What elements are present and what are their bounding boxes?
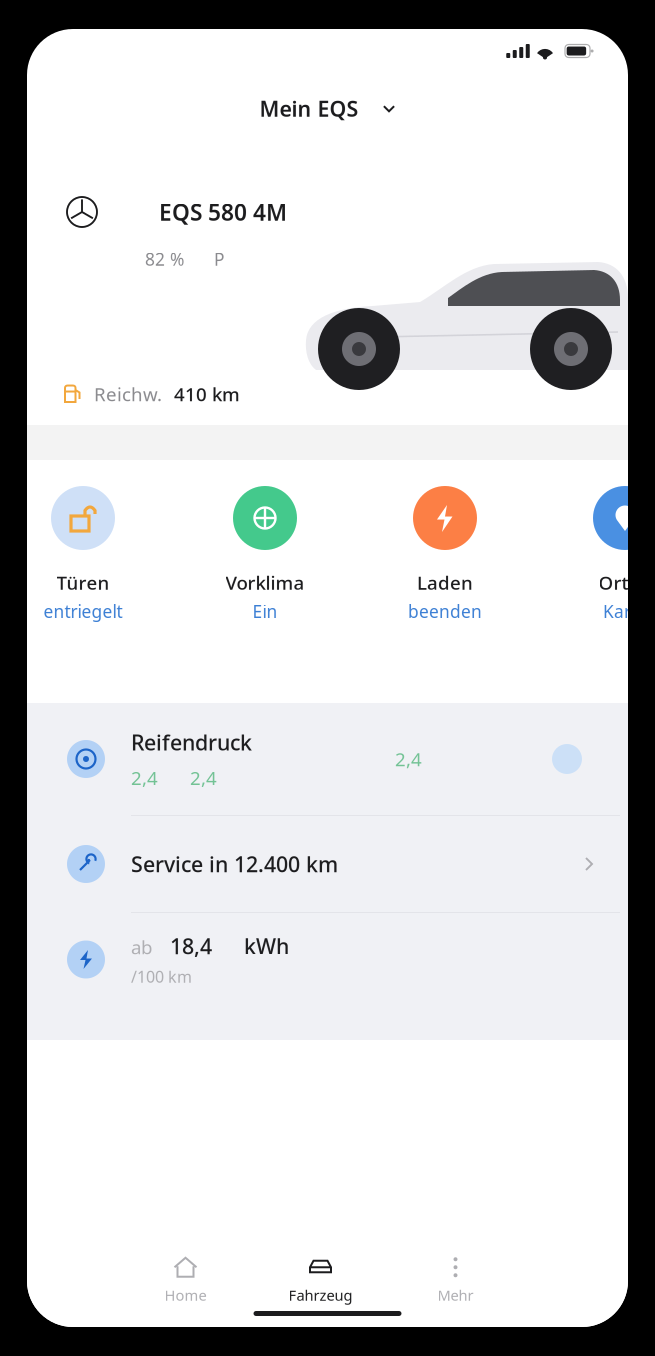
staticText: Vorklima (225, 570, 304, 595)
button[interactable]: Laden (372, 460, 518, 703)
staticText: entriegelt (43, 600, 122, 623)
staticText: Mein EQS (259, 94, 358, 123)
staticText: beenden (408, 600, 482, 623)
staticText: 2,4 (190, 765, 217, 790)
staticText: 82 % (145, 247, 184, 270)
staticText: kWh (244, 932, 289, 960)
staticText: 18,4 (170, 932, 212, 960)
button[interactable]: Fahrzeug (253, 1249, 388, 1311)
staticText: Laden (417, 570, 473, 595)
staticText: Orten (598, 570, 651, 595)
button[interactable]: Fahrzeug wechseln (27, 73, 628, 144)
staticText: Service in 12.400 km (131, 850, 338, 878)
button[interactable]: ab (27, 913, 628, 1006)
staticText: /100 km (131, 966, 192, 987)
staticText: P (214, 247, 224, 270)
button[interactable]: Mehr (388, 1249, 523, 1311)
staticText: Fahrzeug (288, 1285, 352, 1305)
staticText: Mehr (437, 1285, 473, 1305)
staticText: Home (164, 1285, 206, 1305)
staticText: Reichw. (94, 382, 162, 406)
button[interactable]: Vorklima (192, 460, 338, 703)
staticText: Reifendruck (131, 728, 252, 756)
button[interactable]: Reifendruck (27, 703, 628, 815)
staticText: ab (131, 934, 152, 959)
staticText: Türen (56, 570, 109, 595)
staticText: 2,4 (131, 765, 158, 790)
staticText: Karte (603, 600, 647, 623)
button[interactable]: Türen (10, 460, 156, 703)
staticText: EQS 580 4M (159, 197, 287, 227)
staticText: Ein (252, 600, 277, 623)
staticText: 410 km (174, 382, 240, 406)
button[interactable]: Service in 12.400 km (27, 816, 628, 912)
button[interactable]: Orten (552, 460, 655, 703)
staticText: 2,4 (395, 747, 422, 771)
button[interactable]: Home (118, 1249, 253, 1311)
